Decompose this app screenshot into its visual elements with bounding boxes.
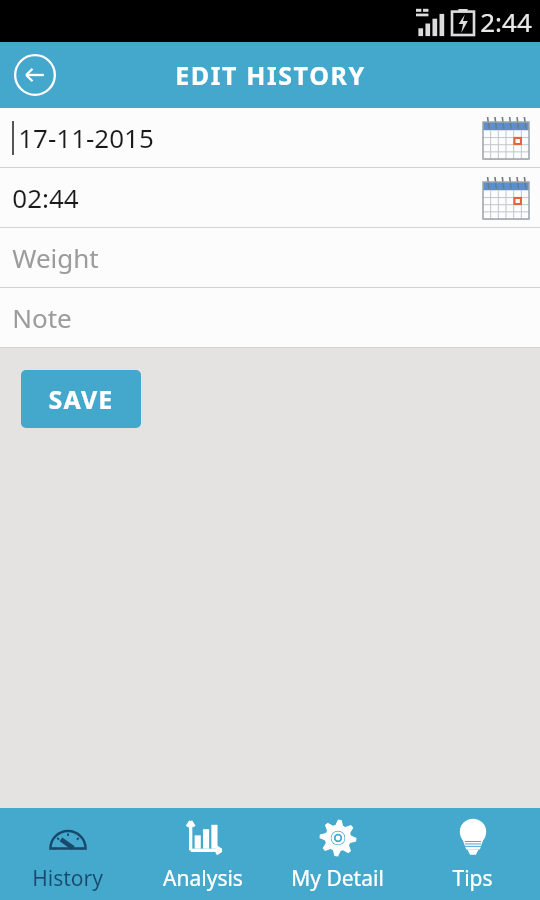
staticText: My Detail [291,864,384,893]
button[interactable]: Note [0,288,540,347]
button[interactable]: Pick date [480,172,532,224]
staticText: Note [12,300,72,335]
button[interactable]: SAVE [21,370,141,428]
button[interactable]: 02:44 [0,168,540,227]
button[interactable]: History [0,808,135,900]
staticText: 17-11-2015 [18,120,154,155]
staticText: Tips [452,864,493,893]
staticText: 2:44 [480,4,532,39]
staticText: History [32,864,103,893]
button[interactable]: My Detail [270,808,405,900]
button[interactable]: Tips [405,808,540,900]
staticText: Analysis [163,864,243,893]
staticText: Weight [12,240,99,275]
button[interactable]: 17-11-2015 [0,108,540,167]
button[interactable]: Back [12,52,58,98]
staticText: 02:44 [12,180,79,215]
button[interactable]: Pick date [480,112,532,164]
staticText: SAVE [48,382,114,416]
button[interactable]: Analysis [135,808,270,900]
staticText: EDIT HISTORY [175,58,366,92]
button[interactable]: Weight [0,228,540,287]
